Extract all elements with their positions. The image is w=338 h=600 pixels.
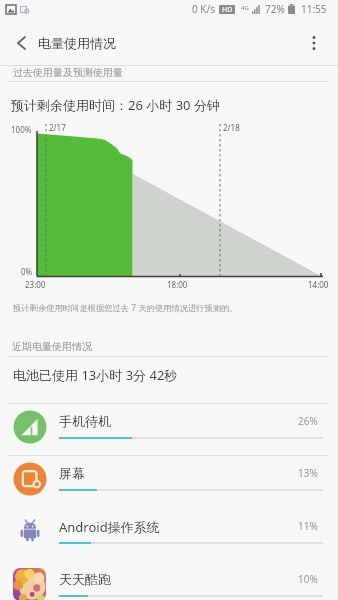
button[interactable]: 天天酷跑 (0, 561, 338, 600)
staticText: 13% (298, 466, 318, 480)
button[interactable]: More options (298, 22, 330, 64)
staticText: 0% (21, 266, 33, 277)
button[interactable]: 屏幕 (0, 455, 338, 507)
staticText: HD (222, 5, 233, 14)
staticText: 14:00 (308, 279, 329, 290)
staticText: 4G (241, 4, 249, 12)
button[interactable]: Android操作系统 (0, 508, 338, 560)
staticText: 过去使用量及预测使用量 (13, 66, 123, 79)
staticText: 电量使用情况 (38, 35, 116, 51)
staticText: 2/17 (49, 122, 66, 133)
staticText: 手机待机 (59, 413, 111, 429)
staticText: 11:55 (301, 2, 327, 16)
button[interactable]: 手机待机 (0, 403, 338, 455)
staticText: 2/18 (223, 122, 240, 133)
staticText: 0 K/s (192, 2, 216, 16)
staticText: 11% (298, 519, 318, 533)
staticText: 10% (298, 572, 318, 586)
staticText: Android操作系统 (59, 518, 160, 536)
staticText: 天天酷跑 (59, 571, 111, 587)
staticText: 预计剩余使用时间是根据您过去 7 天的使用情况进行预测的。 (13, 302, 238, 313)
staticText: 电池已使用 13小时 3分 42秒 (13, 366, 178, 384)
staticText: 23:00 (25, 279, 46, 290)
staticText: 100% (11, 124, 32, 135)
staticText: 近期电量使用情况 (12, 340, 92, 353)
staticText: 预计剩余使用时间：26 小时 30 分钟 (11, 96, 220, 114)
staticText: 26% (298, 414, 318, 428)
staticText: 72% (265, 2, 285, 16)
staticText: 18:00 (167, 279, 188, 290)
button[interactable]: Back (4, 22, 38, 64)
staticText: 屏幕 (59, 465, 85, 481)
